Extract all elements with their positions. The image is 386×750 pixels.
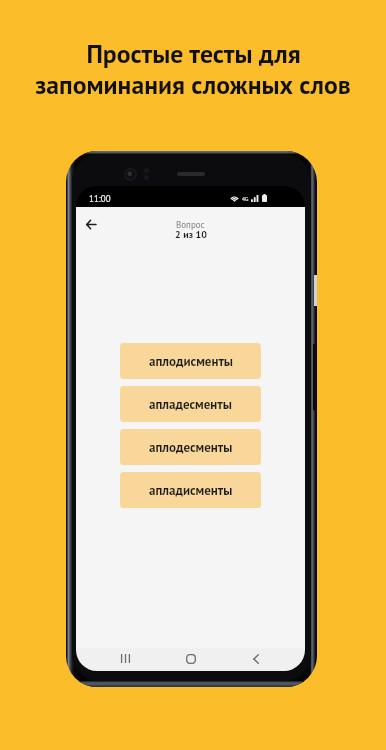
staticText: запоминания сложных слов bbox=[35, 68, 351, 101]
button[interactable]: Назад bbox=[244, 647, 268, 670]
button[interactable]: апладесменты bbox=[120, 386, 261, 422]
staticText: аплодисменты bbox=[149, 353, 233, 370]
button[interactable]: аплодисменты bbox=[120, 343, 261, 379]
staticText: аплодесменты bbox=[149, 439, 233, 456]
button[interactable]: Назад bbox=[76, 209, 106, 239]
button[interactable]: апладисменты bbox=[120, 472, 261, 508]
staticText: 11:00 bbox=[89, 193, 111, 205]
button[interactable]: аплодесменты bbox=[120, 429, 261, 465]
staticText: Простые тесты для bbox=[86, 37, 301, 70]
staticText: апладисменты bbox=[149, 482, 233, 499]
button[interactable]: Главный экран bbox=[179, 647, 203, 670]
staticText: 2 из 10 bbox=[175, 228, 207, 241]
staticText: Вопрос bbox=[176, 219, 205, 231]
staticText: 4G bbox=[242, 195, 249, 202]
staticText: апладесменты bbox=[149, 396, 232, 413]
button[interactable]: Недавние приложения bbox=[113, 647, 137, 670]
